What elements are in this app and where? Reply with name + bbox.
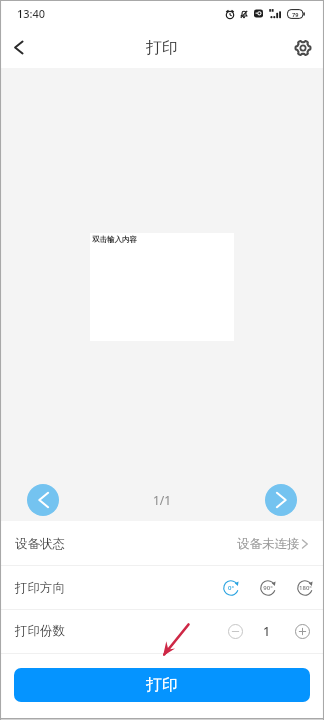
button[interactable]: Rotate 180° bbox=[295, 578, 315, 598]
staticText: 180° bbox=[299, 584, 312, 592]
staticText: 打印 bbox=[146, 38, 178, 58]
button[interactable]: Back bbox=[0, 27, 36, 68]
staticText: 1 bbox=[263, 623, 271, 640]
button[interactable]: Settings bbox=[282, 27, 324, 68]
staticText: 设备未连接 bbox=[237, 536, 300, 552]
staticText: 双击输入内容 bbox=[92, 235, 137, 244]
staticText: 1/1 bbox=[0, 492, 324, 508]
button[interactable]: 双击输入内容 bbox=[90, 233, 234, 341]
staticText: 打印 bbox=[146, 675, 178, 695]
button[interactable]: Decrease copies bbox=[228, 624, 243, 639]
staticText: 设备状态 bbox=[15, 536, 65, 552]
button[interactable]: Increase copies bbox=[295, 624, 310, 639]
button[interactable]: 设备状态 bbox=[0, 521, 324, 566]
staticText: 79 bbox=[292, 11, 299, 18]
button[interactable]: Rotate 0° bbox=[221, 578, 241, 598]
staticText: 0° bbox=[228, 584, 234, 592]
staticText: 13:40 bbox=[17, 6, 46, 21]
staticText: 打印方向 bbox=[15, 580, 65, 596]
staticText: 90° bbox=[263, 584, 273, 592]
button[interactable]: 打印 bbox=[14, 668, 310, 702]
button[interactable]: Rotate 90° bbox=[258, 578, 278, 598]
staticText: 打印份数 bbox=[15, 623, 65, 639]
button[interactable]: Previous page bbox=[27, 484, 59, 516]
button[interactable]: Next page bbox=[265, 484, 297, 516]
